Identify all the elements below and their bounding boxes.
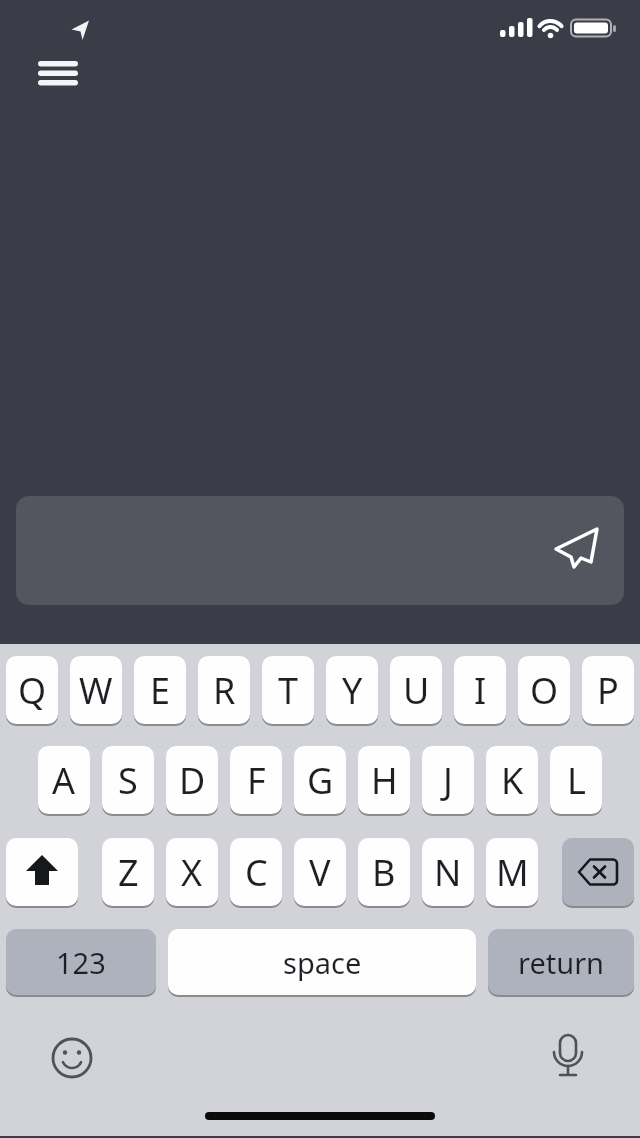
button[interactable]: Q [6,656,58,724]
button[interactable]: U [390,656,442,724]
staticText: N [434,848,462,897]
staticText: R [213,666,236,715]
staticText: Q [18,666,47,715]
staticText: E [150,666,171,715]
staticText: C [245,848,268,897]
staticText: return [518,943,605,982]
staticText: F [247,756,266,805]
staticText: Y [342,666,363,715]
button[interactable]: return [488,929,634,995]
staticText: space [283,943,362,982]
button[interactable] [536,1026,600,1090]
staticText: O [530,666,559,715]
button[interactable]: E [134,656,186,724]
staticText: M [496,848,529,897]
button[interactable] [40,1026,104,1090]
button[interactable]: V [294,838,346,906]
staticText: U [403,666,430,715]
button[interactable]: W [70,656,122,724]
staticText: W [79,666,113,715]
button[interactable]: H [358,746,410,814]
staticText: K [501,756,524,805]
button[interactable]: C [230,838,282,906]
button[interactable]: Y [326,656,378,724]
button[interactable]: J [422,746,474,814]
button[interactable]: T [262,656,314,724]
staticText: S [118,756,138,805]
button[interactable]: G [294,746,346,814]
staticText: I [474,666,487,715]
button[interactable]: X [166,838,218,906]
staticText: P [597,666,619,715]
button[interactable]: S [102,746,154,814]
staticText: X [181,848,203,897]
button[interactable]: O [518,656,570,724]
button[interactable]: L [550,746,602,814]
staticText: G [307,756,334,805]
button[interactable]: Z [102,838,154,906]
button[interactable]: B [358,838,410,906]
staticText: H [371,756,398,805]
button[interactable] [6,838,78,906]
button[interactable] [28,50,88,96]
button[interactable]: M [486,838,538,906]
button[interactable]: F [230,746,282,814]
button[interactable]: N [422,838,474,906]
button[interactable]: A [38,746,90,814]
button[interactable]: P [582,656,634,724]
staticText: L [567,756,586,805]
staticText: A [52,756,76,805]
staticText: J [443,756,453,805]
staticText: T [278,666,299,715]
staticText: D [179,756,206,805]
button[interactable]: K [486,746,538,814]
staticText: B [372,848,396,897]
staticText: 123 [56,943,106,982]
button[interactable]: space [168,929,476,995]
button[interactable]: D [166,746,218,814]
button[interactable] [16,496,624,605]
button[interactable]: I [454,656,506,724]
button[interactable]: 123 [6,929,156,995]
button[interactable] [562,838,634,906]
button[interactable]: R [198,656,250,724]
staticText: Z [118,848,139,897]
staticText: V [309,848,331,897]
